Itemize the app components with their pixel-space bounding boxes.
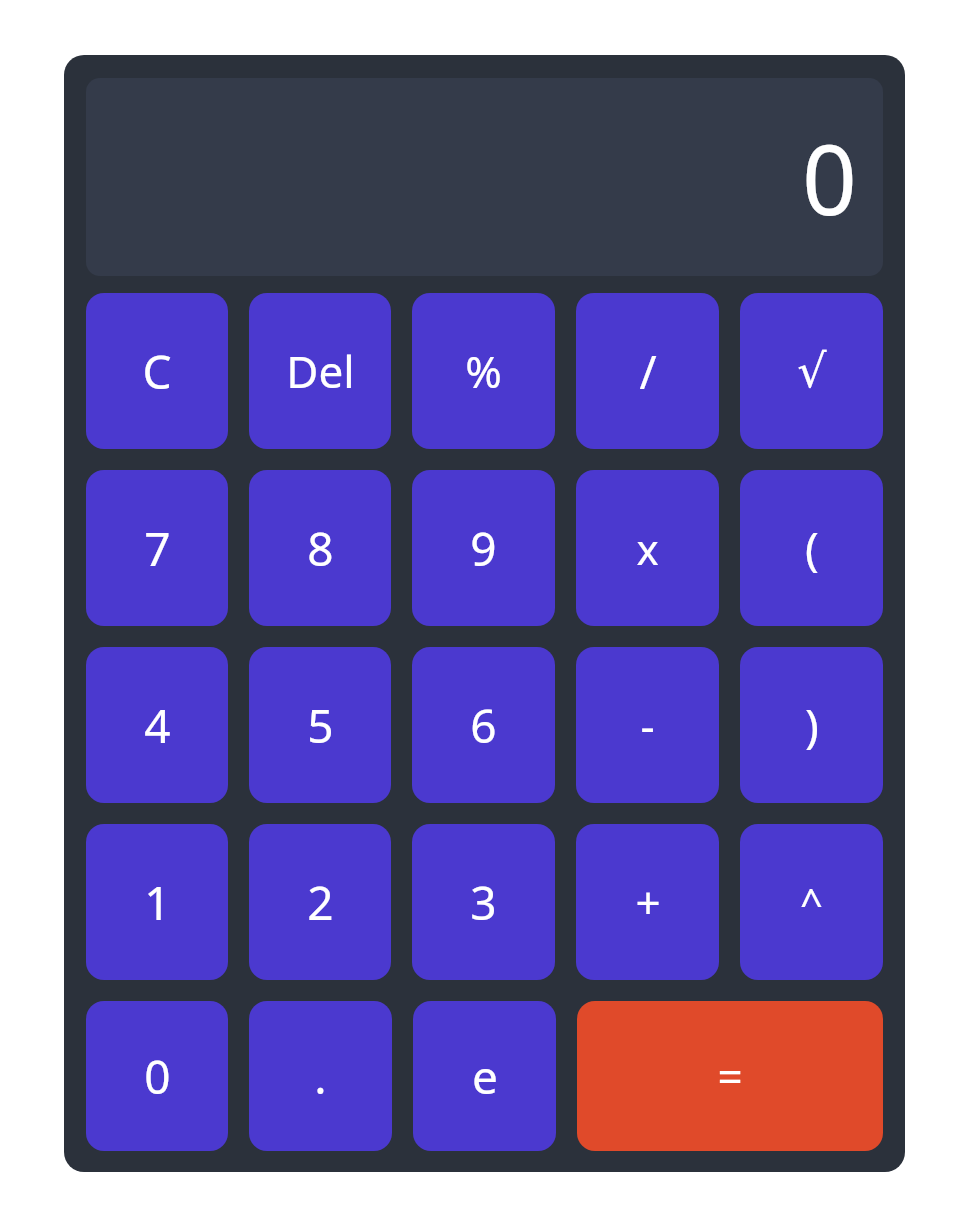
button[interactable]: . (249, 1001, 392, 1151)
button[interactable]: 0 (86, 1001, 228, 1151)
staticText: 9 (470, 517, 497, 580)
staticText: % (465, 341, 502, 401)
staticText: - (640, 695, 655, 755)
staticText: 7 (144, 517, 171, 580)
staticText: ^ (800, 875, 823, 929)
button[interactable]: e (413, 1001, 556, 1151)
button[interactable]: 1 (86, 824, 228, 980)
staticText: = (717, 1046, 743, 1106)
staticText: Del (286, 341, 355, 401)
button[interactable]: 7 (86, 470, 228, 626)
staticText: 1 (144, 871, 171, 934)
button[interactable]: ( (740, 470, 883, 626)
button[interactable]: Del (249, 293, 391, 449)
staticText: + (635, 872, 661, 932)
staticText: 3 (470, 871, 497, 934)
staticText: / (639, 340, 657, 403)
staticText: . (314, 1045, 327, 1108)
staticText: ( (805, 517, 819, 580)
button[interactable]: 8 (249, 470, 391, 626)
button[interactable]: 0 (86, 78, 883, 276)
staticText: C (142, 340, 172, 403)
staticText: √ (797, 344, 827, 398)
button[interactable]: 5 (249, 647, 391, 803)
staticText: 8 (307, 517, 334, 580)
staticText: 6 (470, 694, 497, 757)
button[interactable]: 6 (412, 647, 555, 803)
staticText: x (636, 520, 659, 577)
button[interactable]: 4 (86, 647, 228, 803)
staticText: ) (805, 694, 819, 757)
button[interactable]: ) (740, 647, 883, 803)
button[interactable]: Square root (740, 293, 883, 449)
staticText: 0 (144, 1045, 171, 1108)
button[interactable]: = (577, 1001, 883, 1151)
button[interactable]: / (576, 293, 719, 449)
staticText: 5 (307, 694, 334, 757)
button[interactable]: Power (740, 824, 883, 980)
staticText: 0 (802, 112, 857, 243)
button[interactable]: + (576, 824, 719, 980)
button[interactable]: 2 (249, 824, 391, 980)
button[interactable]: - (576, 647, 719, 803)
staticText: 4 (144, 694, 171, 757)
button[interactable]: 9 (412, 470, 555, 626)
button[interactable]: C (86, 293, 228, 449)
button[interactable]: 3 (412, 824, 555, 980)
button[interactable]: x (576, 470, 719, 626)
staticText: 2 (307, 871, 334, 934)
button[interactable]: % (412, 293, 555, 449)
staticText: e (472, 1045, 498, 1108)
